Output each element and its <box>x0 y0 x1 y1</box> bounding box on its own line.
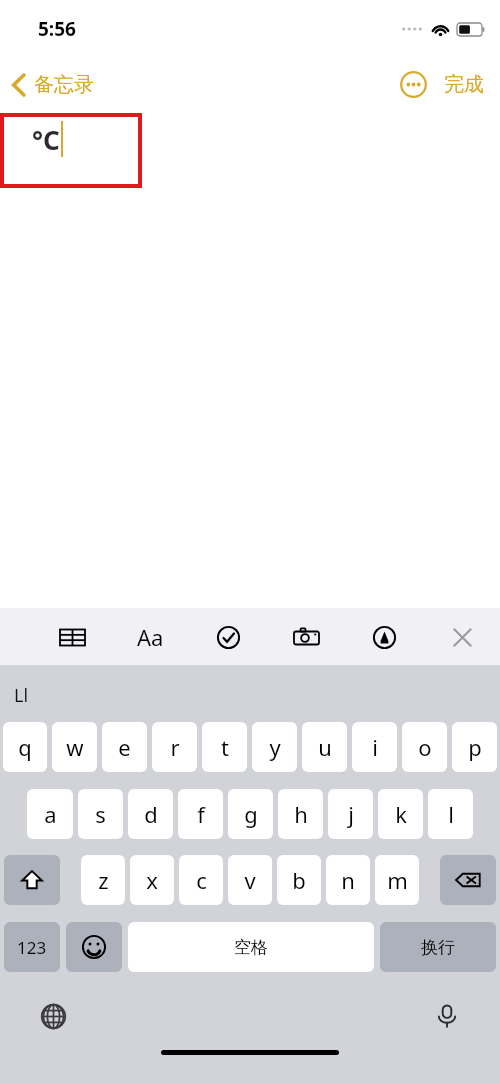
staticText: q <box>18 732 32 762</box>
button[interactable]: 备忘录 <box>12 72 94 97</box>
button[interactable]: Aa <box>130 617 170 657</box>
staticText: 123 <box>17 936 47 959</box>
button[interactable]: p <box>452 722 497 772</box>
button[interactable]: l <box>428 789 473 839</box>
staticText: a <box>44 799 57 829</box>
button[interactable]: a <box>27 789 73 839</box>
button[interactable]: f <box>178 789 223 839</box>
button[interactable]: e <box>102 722 147 772</box>
button[interactable]: h <box>278 789 323 839</box>
button[interactable]: u <box>302 722 347 772</box>
button[interactable]: g <box>228 789 273 839</box>
button[interactable]: y <box>252 722 297 772</box>
button[interactable]: 123 <box>4 922 60 972</box>
staticText: t <box>221 732 229 762</box>
button[interactable]: q <box>3 722 47 772</box>
button[interactable]: j <box>328 789 373 839</box>
staticText: 完成 <box>444 72 484 97</box>
button[interactable]: c <box>179 855 223 905</box>
staticText: Aa <box>137 622 164 652</box>
staticText: k <box>395 799 407 829</box>
staticText: h <box>294 799 308 829</box>
button[interactable]: Close keyboard <box>442 617 482 657</box>
button[interactable]: s <box>78 789 123 839</box>
staticText: y <box>269 732 281 762</box>
button[interactable]: Emoji <box>66 922 122 972</box>
button[interactable]: Markup <box>364 617 404 657</box>
staticText: n <box>341 865 355 895</box>
button[interactable]: Switch keyboard <box>36 999 70 1033</box>
staticText: r <box>170 732 180 762</box>
staticText: x <box>146 865 158 895</box>
button[interactable]: x <box>130 855 174 905</box>
staticText: e <box>118 732 131 762</box>
staticText: v <box>244 865 256 895</box>
staticText: d <box>144 799 158 829</box>
staticText: °C <box>32 122 60 157</box>
staticText: s <box>95 799 106 829</box>
button[interactable]: w <box>52 722 97 772</box>
staticText: m <box>387 865 408 895</box>
button[interactable]: i <box>352 722 397 772</box>
staticText: p <box>468 732 482 762</box>
button[interactable]: t <box>202 722 247 772</box>
button[interactable]: Dictate <box>430 999 464 1033</box>
staticText: 5:56 <box>38 16 76 42</box>
button[interactable]: d <box>128 789 173 839</box>
staticText: j <box>348 799 354 829</box>
staticText: 换行 <box>421 937 455 958</box>
button[interactable]: b <box>277 855 321 905</box>
button[interactable]: 换行 <box>380 922 496 972</box>
button[interactable]: 完成 <box>444 72 484 97</box>
button[interactable]: r <box>152 722 197 772</box>
staticText: i <box>372 732 378 762</box>
button[interactable]: n <box>326 855 370 905</box>
staticText: z <box>98 865 109 895</box>
button[interactable]: m <box>375 855 419 905</box>
staticText: o <box>418 732 432 762</box>
staticText: b <box>292 865 306 895</box>
button[interactable]: k <box>378 789 423 839</box>
button[interactable]: Checklist <box>208 617 248 657</box>
button[interactable]: Backspace <box>440 855 496 905</box>
staticText: u <box>318 732 332 762</box>
staticText: 备忘录 <box>34 72 94 97</box>
button[interactable]: °C <box>2 115 140 186</box>
button[interactable]: v <box>228 855 272 905</box>
staticText: 空格 <box>234 937 268 958</box>
staticText: c <box>196 865 207 895</box>
button[interactable]: z <box>81 855 125 905</box>
button[interactable]: Shift <box>4 855 60 905</box>
button[interactable]: Camera <box>286 617 326 657</box>
staticText: f <box>197 799 205 829</box>
button[interactable]: 空格 <box>128 922 374 972</box>
button[interactable]: o <box>402 722 447 772</box>
staticText: w <box>66 732 84 762</box>
staticText: l <box>448 799 454 829</box>
button[interactable]: Table <box>52 617 92 657</box>
button[interactable]: More options <box>396 67 430 101</box>
staticText: g <box>244 799 258 829</box>
staticText: Ll <box>14 683 29 708</box>
